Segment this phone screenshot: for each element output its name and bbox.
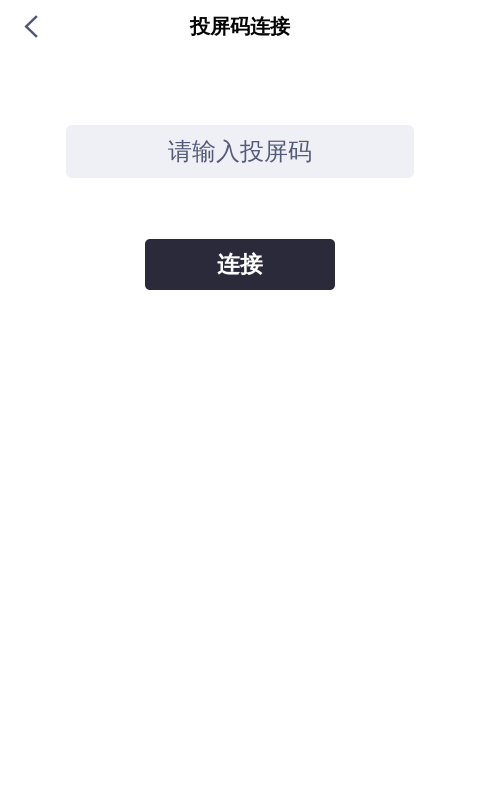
button[interactable]: 请输入投屏码 [66,125,414,178]
staticText: 请输入投屏码 [168,137,312,166]
staticText: 投屏码连接 [190,14,290,39]
staticText: 连接 [217,251,263,278]
button[interactable]: 连接 [145,239,335,290]
button[interactable]: 返回 [5,0,57,52]
